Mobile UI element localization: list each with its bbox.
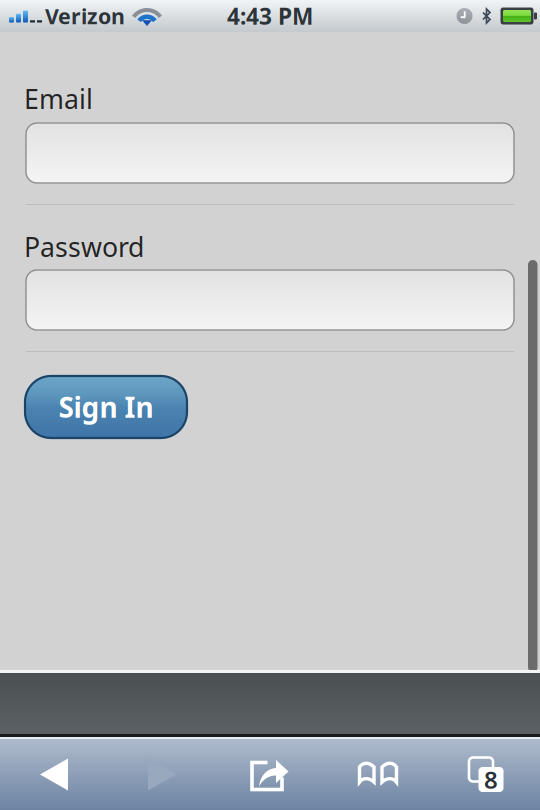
button[interactable]: Tabs [432,739,540,810]
staticText: 8 [484,764,498,795]
staticText: Email [24,81,93,116]
staticText: 4:43 PM [227,1,313,31]
button[interactable]: Forward [108,739,216,810]
staticText: Sign In [58,388,153,426]
staticText: Password [24,229,144,264]
button[interactable]: Bookmarks [324,739,432,810]
button[interactable]: Sign In [25,376,187,438]
button[interactable]: Share [216,739,324,810]
button[interactable]: Back [0,739,108,810]
staticText: Verizon [45,2,125,30]
